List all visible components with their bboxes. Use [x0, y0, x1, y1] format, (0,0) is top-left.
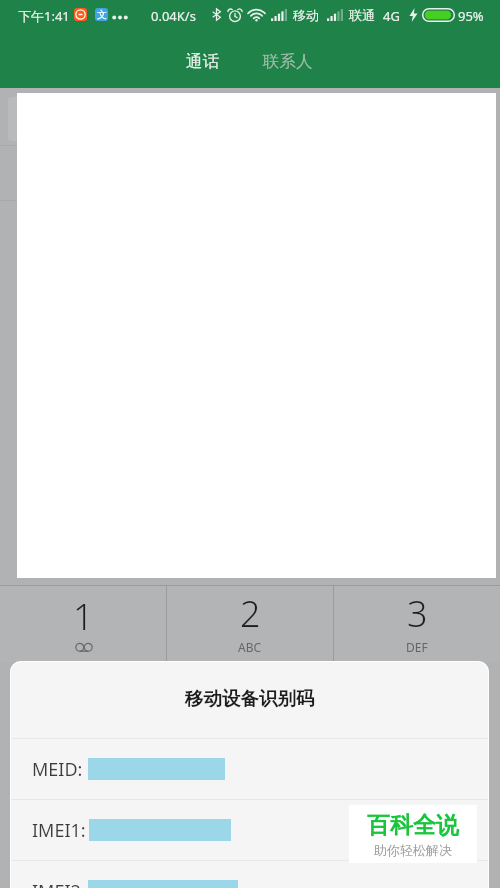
staticText: 文 — [97, 8, 107, 21]
button[interactable]: Dial 1 — [0, 586, 166, 662]
button[interactable]: Dial 2 — [167, 586, 333, 662]
staticText: 移动设备识别码 — [185, 687, 315, 710]
staticText: 1 — [73, 592, 94, 641]
staticText: 联系人 — [263, 51, 313, 72]
staticText: 下午1:41 — [18, 7, 70, 25]
staticText: 95% — [458, 7, 484, 25]
button[interactable]: 联系人 — [253, 46, 323, 76]
staticText: MEID: — [32, 757, 83, 782]
staticText: ABC — [238, 639, 262, 655]
staticText: 通话 — [186, 51, 219, 72]
staticText: 2 — [240, 589, 261, 638]
staticText: DEF — [406, 639, 428, 655]
button[interactable]: Dial 3 — [334, 586, 500, 662]
staticText: 移动 — [293, 7, 319, 23]
button[interactable]: IMEI1: — [11, 800, 488, 860]
button[interactable]: MEID: — [11, 739, 488, 799]
staticText: IMEI1: — [32, 818, 86, 843]
staticText: 助你轻松解决 — [374, 842, 452, 858]
staticText: 3 — [407, 589, 428, 638]
staticText: 0.04K/s — [151, 7, 196, 25]
staticText: 百科全说 — [367, 811, 459, 840]
staticText: IMEI2: — [32, 879, 86, 888]
staticText: 联通 — [349, 7, 375, 23]
button[interactable]: 通话 — [168, 46, 236, 76]
staticText: 4G — [383, 7, 400, 25]
button[interactable]: IMEI2: — [11, 861, 488, 888]
